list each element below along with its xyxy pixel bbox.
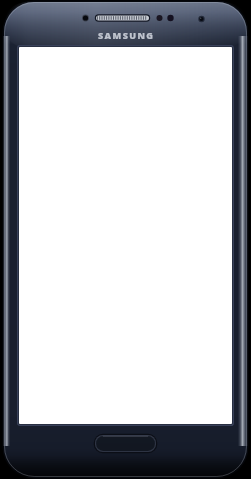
- button[interactable]: Home: [95, 435, 156, 452]
- staticText: SAMSUNG: [98, 29, 155, 40]
